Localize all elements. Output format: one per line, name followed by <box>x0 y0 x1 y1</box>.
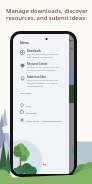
staticText: Resource Center <box>27 62 48 65</box>
staticText: Learn More / Language Settings <box>26 119 62 122</box>
staticText: Manage downloads, discover resources, an… <box>6 7 88 21</box>
staticText: Even more <box>20 92 32 95</box>
button[interactable]: Submit an Idea <box>13 75 69 88</box>
staticText: Feedback <box>26 111 37 114</box>
staticText: Downloads <box>27 49 41 52</box>
staticText: Explore relevant resources for any activ… <box>27 66 59 72</box>
staticText: Submit an Idea <box>27 75 46 78</box>
staticText: FAQ <box>26 104 31 107</box>
staticText: Manage downloaded badges and saved porta… <box>27 53 59 59</box>
button[interactable]: Downloads <box>13 49 69 62</box>
button[interactable]: Learn More / Language Settings <box>13 116 69 124</box>
button[interactable]: FAQ <box>13 101 69 109</box>
button[interactable]: Feedback <box>13 108 69 116</box>
staticText: Tell us what you would like to see added… <box>27 79 59 88</box>
staticText: Menu <box>20 41 29 45</box>
button[interactable]: Resource Center <box>13 62 69 75</box>
